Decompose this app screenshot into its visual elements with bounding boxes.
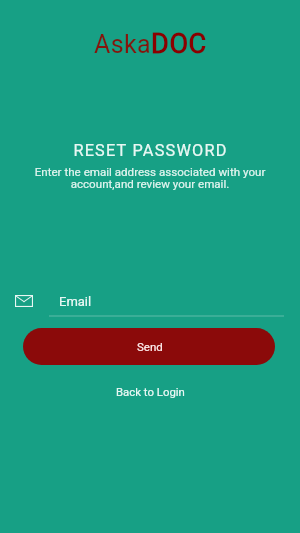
staticText: Enter the email address associated with … <box>10 165 290 191</box>
button[interactable]: Back to Login <box>104 380 197 403</box>
staticText: AskaDOC <box>94 28 207 60</box>
staticText: Send <box>137 340 163 353</box>
staticText: Back to Login <box>116 385 185 398</box>
button[interactable]: Send <box>23 328 275 365</box>
staticText: Email <box>59 294 92 309</box>
staticText: RESET PASSWORD <box>73 141 228 160</box>
other: Email <box>15 295 33 307</box>
